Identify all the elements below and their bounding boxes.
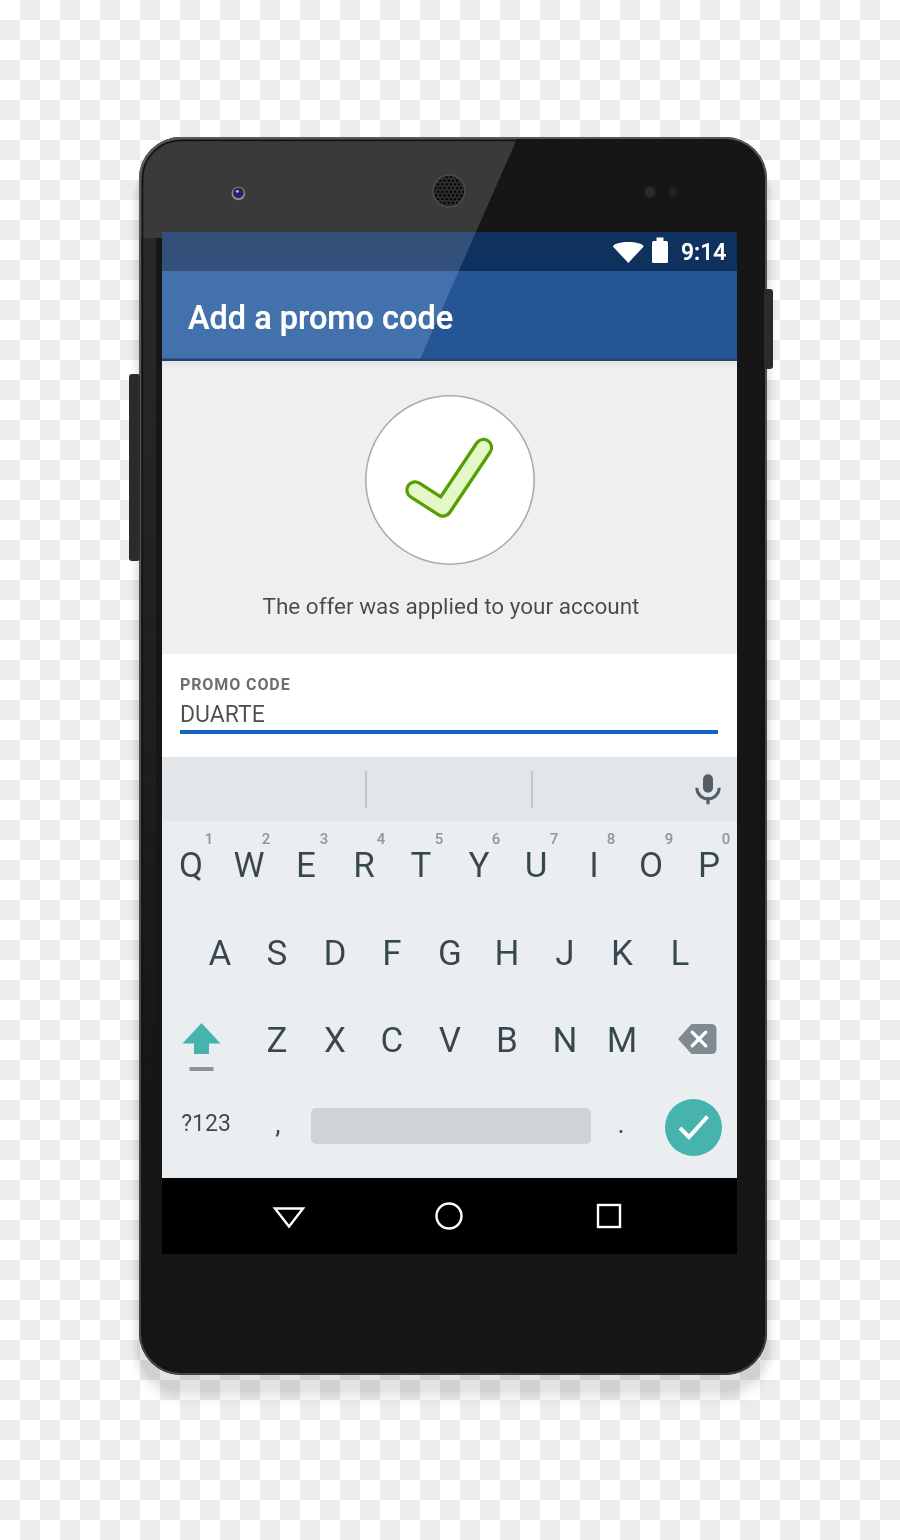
button[interactable]: C <box>363 996 421 1082</box>
button[interactable]: P <box>680 821 738 907</box>
staticText: Q <box>162 845 220 886</box>
button[interactable]: Voice input <box>676 757 737 821</box>
button[interactable]: Home <box>389 1178 509 1254</box>
button[interactable]: L <box>651 909 709 995</box>
staticText: 9:14 <box>681 239 727 266</box>
staticText: H <box>478 933 536 974</box>
staticText: X <box>306 1020 364 1061</box>
staticText: 5 <box>139 830 739 848</box>
button[interactable]: . <box>586 1084 656 1170</box>
staticText: K <box>593 933 651 974</box>
staticText: 8 <box>311 830 900 848</box>
staticText: 4 <box>81 830 681 848</box>
button[interactable]: Z <box>248 996 306 1082</box>
button[interactable]: S <box>248 909 306 995</box>
button[interactable]: N <box>536 996 594 1082</box>
button[interactable]: Enter <box>665 1099 722 1156</box>
staticText: M <box>593 1020 651 1061</box>
staticText: F <box>363 933 421 974</box>
button[interactable]: W <box>220 821 278 907</box>
staticText: S <box>248 933 306 974</box>
staticText: B <box>478 1020 536 1061</box>
staticText: 3 <box>24 830 624 848</box>
button[interactable]: J <box>536 909 594 995</box>
staticText: R <box>335 845 393 886</box>
button[interactable]: G <box>421 909 479 995</box>
button[interactable]: V <box>421 996 479 1082</box>
button[interactable]: O <box>622 821 680 907</box>
staticText: C <box>363 1020 421 1061</box>
staticText: 0 <box>426 830 900 848</box>
staticText: L <box>651 933 709 974</box>
button[interactable]: R <box>335 821 393 907</box>
staticText: A <box>191 933 249 974</box>
button[interactable]: M <box>593 996 651 1082</box>
staticText: PROMO CODE <box>180 675 291 694</box>
button[interactable]: X <box>306 996 364 1082</box>
staticText: W <box>220 845 278 886</box>
button[interactable]: , <box>243 1084 313 1170</box>
staticText: 2 <box>0 830 566 848</box>
button[interactable]: Add a promo code <box>162 271 737 361</box>
button[interactable]: U <box>507 821 565 907</box>
staticText: 1 <box>0 830 509 848</box>
button[interactable]: Back <box>229 1178 349 1254</box>
staticText: V <box>421 1020 479 1061</box>
staticText: Y <box>450 845 508 886</box>
staticText: E <box>277 845 335 886</box>
staticText: N <box>536 1020 594 1061</box>
button[interactable]: Y <box>450 821 508 907</box>
button[interactable]: PROMO CODE <box>162 654 737 757</box>
staticText: Add a promo code <box>188 299 454 337</box>
staticText: I <box>565 845 623 886</box>
staticText: G <box>421 933 479 974</box>
staticText: T <box>392 845 450 886</box>
button[interactable]: ?123 <box>171 1084 241 1170</box>
button[interactable]: Recent apps <box>549 1178 669 1254</box>
button[interactable]: I <box>565 821 623 907</box>
staticText: 7 <box>254 830 854 848</box>
button[interactable]: Space <box>288 1084 604 1170</box>
staticText: . <box>586 1108 656 1140</box>
button[interactable]: B <box>478 996 536 1082</box>
staticText: J <box>536 933 594 974</box>
button[interactable]: H <box>478 909 536 995</box>
staticText: O <box>622 845 680 886</box>
staticText: 9 <box>369 830 900 848</box>
staticText: P <box>680 845 738 886</box>
button[interactable]: D <box>306 909 364 995</box>
staticText: DUARTE <box>180 701 265 728</box>
staticText: Z <box>248 1020 306 1061</box>
button[interactable]: Delete <box>669 996 738 1082</box>
staticText: ?123 <box>171 1110 241 1137</box>
button[interactable]: Shift <box>162 996 248 1082</box>
staticText: D <box>306 933 364 974</box>
staticText: U <box>507 845 565 886</box>
button[interactable]: Q <box>162 821 220 907</box>
button[interactable]: E <box>277 821 335 907</box>
staticText: 6 <box>196 830 796 848</box>
staticText: The offer was applied to your account <box>151 593 751 619</box>
button[interactable]: F <box>363 909 421 995</box>
staticText: , <box>243 1108 313 1140</box>
button[interactable]: T <box>392 821 450 907</box>
button[interactable]: A <box>191 909 249 995</box>
button[interactable]: K <box>593 909 651 995</box>
